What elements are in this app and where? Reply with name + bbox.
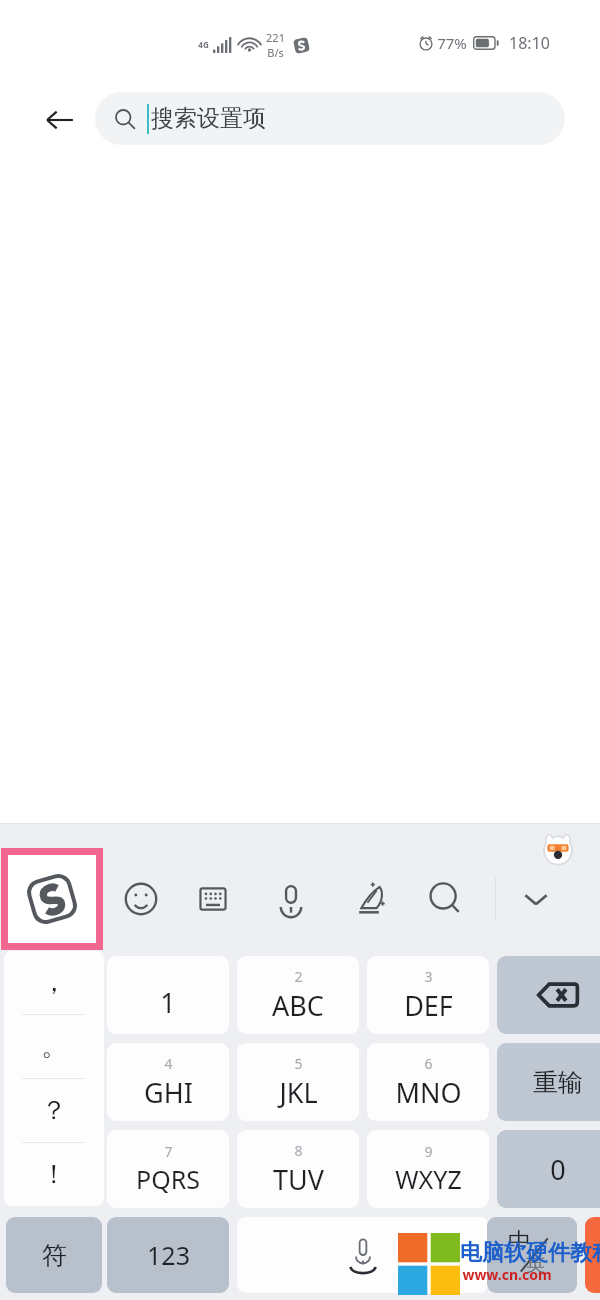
staticText: 符 (42, 1240, 67, 1271)
staticText: MNO (395, 1074, 462, 1111)
button[interactable]: 搜索设置项 (95, 92, 565, 145)
button[interactable]: 123 (107, 1217, 229, 1293)
button[interactable]: Emoji (108, 848, 174, 950)
button[interactable]: Assistant (538, 828, 578, 868)
staticText: 8 (294, 1141, 303, 1160)
staticText: 221 (266, 30, 285, 45)
staticText: PQRS (136, 1162, 200, 1196)
button[interactable]: Hide keyboard (508, 848, 564, 950)
staticText: 3 (424, 967, 433, 986)
staticText: ， (41, 966, 67, 999)
button[interactable]: 5 (237, 1043, 359, 1121)
button[interactable]: 4 (107, 1043, 229, 1121)
staticText: WXYZ (395, 1162, 462, 1196)
staticText: 2 (294, 967, 303, 986)
button[interactable]: 。 (4, 1015, 104, 1078)
staticText: 4G (198, 39, 209, 50)
button[interactable]: ！ (4, 1143, 104, 1206)
staticText: 。 (41, 1030, 67, 1063)
staticText: 9 (424, 1142, 433, 1161)
button[interactable]: 1 (107, 956, 229, 1034)
button[interactable]: 6 (367, 1043, 489, 1121)
staticText: JKL (279, 1074, 318, 1111)
staticText: 7 (164, 1142, 173, 1161)
staticText: GHI (144, 1074, 193, 1111)
button[interactable]: 9 (367, 1130, 489, 1208)
staticText: 6 (424, 1054, 433, 1073)
staticText: TUV (273, 1161, 324, 1198)
button[interactable]: 8 (237, 1130, 359, 1208)
button[interactable]: 重输 (497, 1043, 600, 1121)
staticText: 英 (526, 1253, 545, 1277)
staticText: 77% (437, 33, 467, 53)
staticText: ？ (41, 1094, 67, 1127)
button[interactable]: ， (4, 951, 104, 1014)
staticText: 电脑软硬件教程网 (460, 1239, 600, 1267)
staticText: 1 (160, 984, 176, 1021)
button[interactable]: 搜索 (585, 1217, 600, 1293)
button[interactable]: Keyboard layout (174, 848, 252, 950)
button[interactable]: 7 (107, 1130, 229, 1208)
button[interactable]: Space, voice input (237, 1217, 489, 1293)
button[interactable]: 符 (6, 1217, 102, 1293)
staticText: 18:10 (509, 32, 550, 54)
button[interactable]: 3 (367, 956, 489, 1034)
staticText: 中 (508, 1227, 531, 1256)
staticText: ABC (272, 987, 324, 1024)
staticText: 0 (550, 1151, 566, 1188)
staticText: 重输 (533, 1067, 583, 1098)
button[interactable]: Handwriting (330, 848, 408, 950)
staticText: www.cn.com (462, 1265, 552, 1284)
button[interactable]: Backspace (497, 956, 600, 1034)
staticText: 123 (147, 1238, 190, 1272)
button[interactable]: Sogou input settings (8, 855, 96, 943)
button[interactable]: Back (32, 92, 88, 148)
staticText: 搜索设置项 (151, 104, 266, 133)
button[interactable]: 0 (497, 1130, 600, 1208)
button[interactable]: Voice input (252, 848, 330, 950)
button[interactable]: ？ (4, 1079, 104, 1142)
staticText: ！ (41, 1158, 67, 1191)
staticText: B/s (267, 45, 284, 60)
staticText: 5 (294, 1054, 303, 1073)
staticText: 4 (164, 1054, 173, 1073)
staticText: DEF (404, 987, 453, 1024)
button[interactable]: 2 (237, 956, 359, 1034)
button[interactable]: 中 (487, 1217, 577, 1293)
button[interactable]: Search (408, 848, 482, 950)
